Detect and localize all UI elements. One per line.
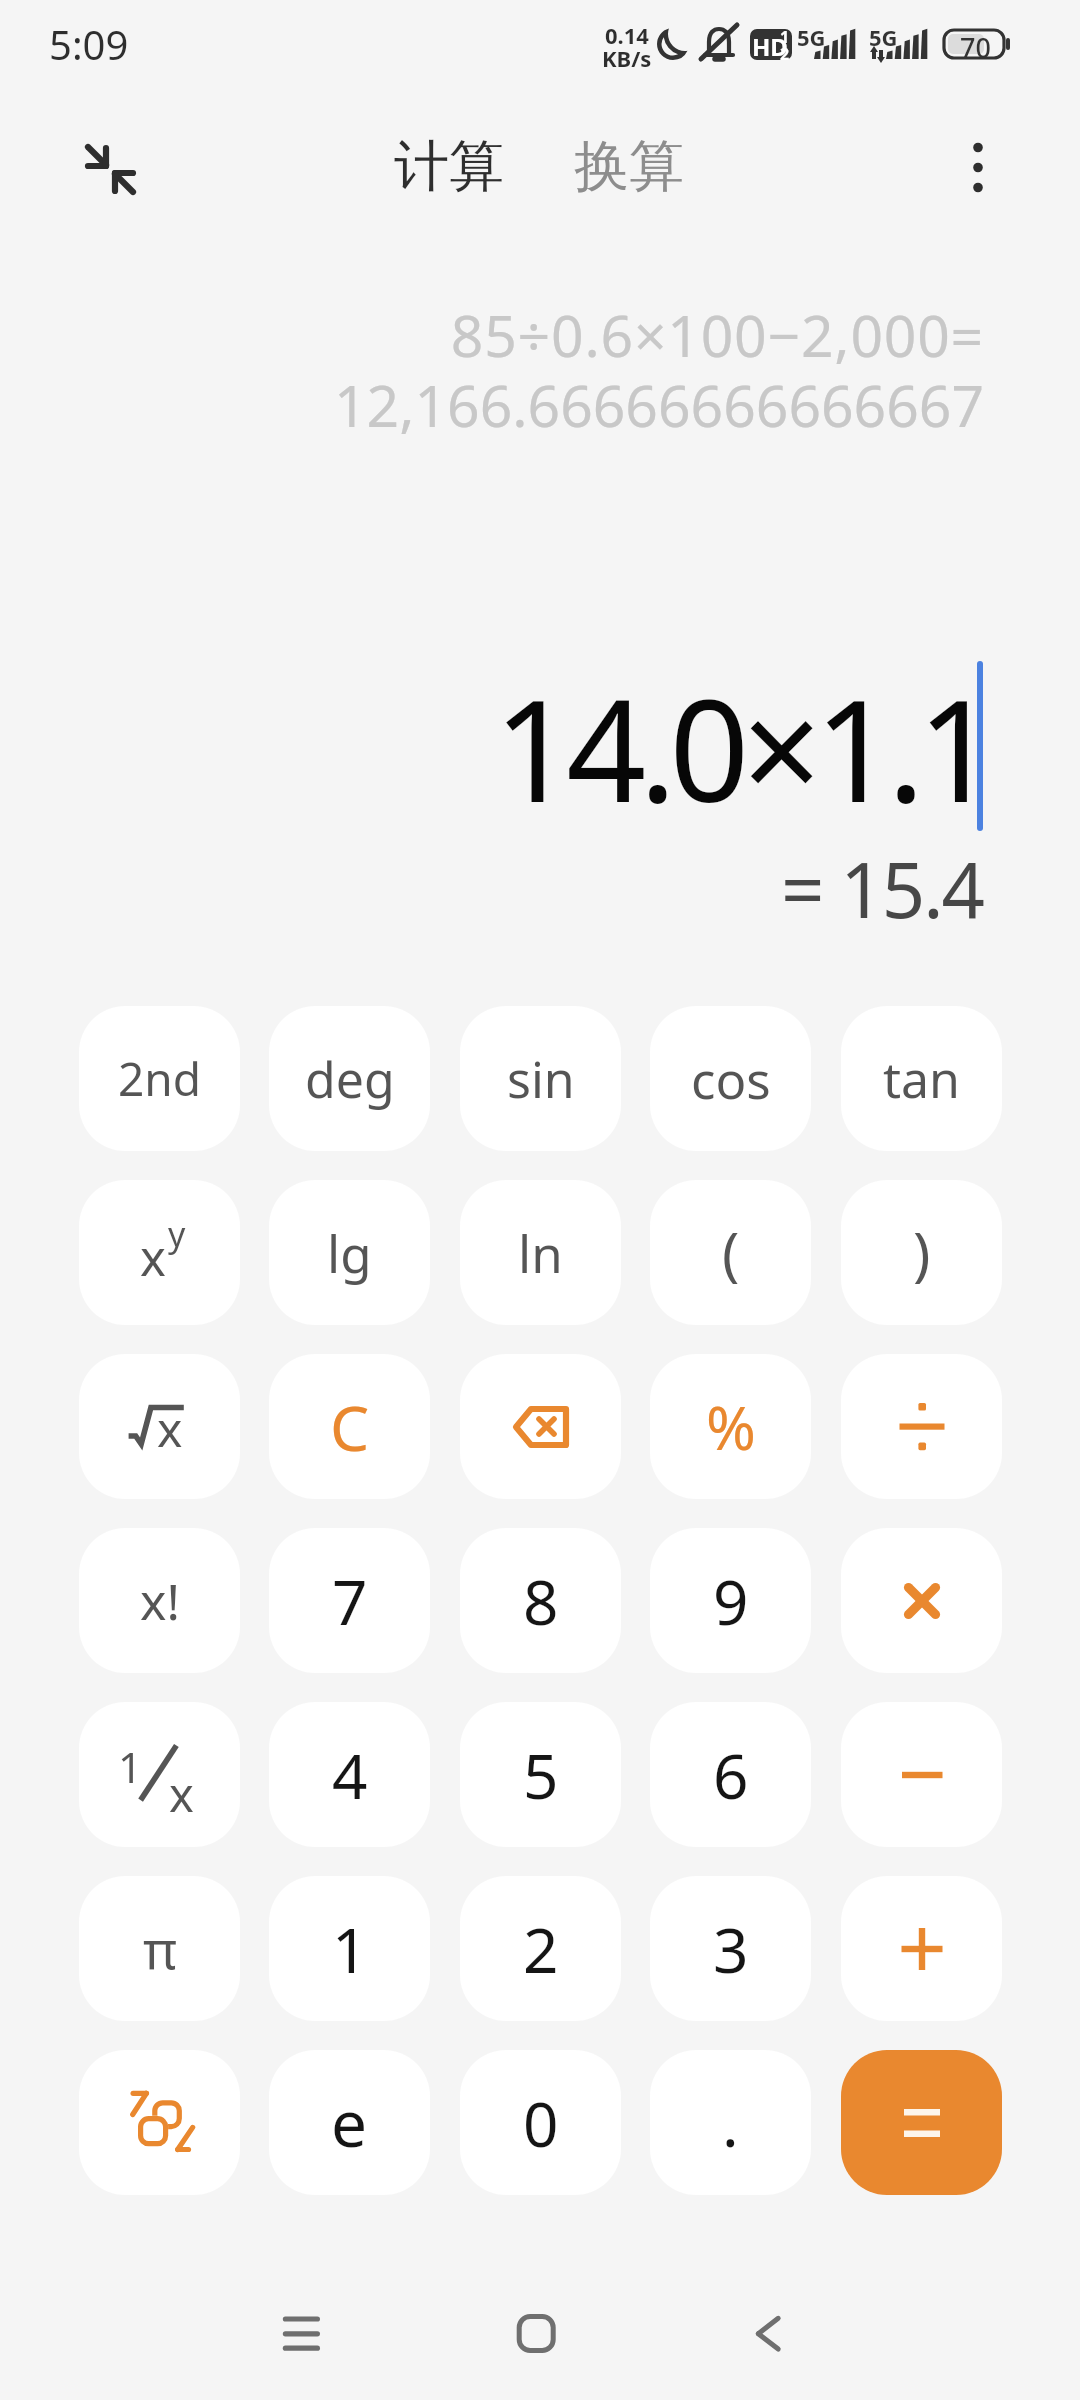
- button[interactable]: Back: [718, 2283, 818, 2383]
- button[interactable]: ): [841, 1180, 1002, 1325]
- staticText: x: [169, 1762, 194, 1826]
- button[interactable]: sin: [460, 1006, 621, 1151]
- staticText: 5:09: [49, 17, 129, 71]
- staticText: 1: [332, 1907, 368, 1991]
- button[interactable]: cos: [650, 1006, 811, 1151]
- staticText: 5: [523, 1733, 559, 1817]
- staticText: x: [140, 1224, 166, 1291]
- staticText: lg: [327, 1218, 372, 1287]
- button[interactable]: π: [79, 1876, 240, 2021]
- button[interactable]: C: [269, 1354, 430, 1499]
- staticText: 7: [332, 1559, 368, 1643]
- button[interactable]: 3: [650, 1876, 811, 2021]
- staticText: cos: [691, 1044, 771, 1113]
- staticText: deg: [305, 1045, 395, 1113]
- staticText: 6: [713, 1733, 749, 1817]
- button[interactable]: Square root: [79, 1354, 240, 1499]
- staticText: 12,166.66666666666667: [0, 366, 984, 444]
- staticText: 5G: [797, 22, 826, 52]
- button[interactable]: lg: [269, 1180, 430, 1325]
- button[interactable]: Backspace: [460, 1354, 621, 1499]
- button[interactable]: 7: [269, 1528, 430, 1673]
- button[interactable]: Reciprocal: [79, 1702, 240, 1847]
- staticText: π: [143, 1913, 177, 1984]
- staticText: 85÷0.6×100−2,000=: [0, 296, 984, 374]
- button[interactable]: 1: [269, 1876, 430, 2021]
- staticText: 2: [523, 1907, 559, 1991]
- staticText: 4: [332, 1733, 368, 1817]
- button[interactable]: Equals: [841, 2050, 1002, 2195]
- staticText: KB/s: [602, 43, 652, 73]
- staticText: 计算: [394, 132, 504, 201]
- staticText: 0.14: [605, 20, 649, 50]
- button[interactable]: Home: [486, 2283, 586, 2383]
- staticText: ): [913, 1213, 931, 1292]
- button[interactable]: 9: [650, 1528, 811, 1673]
- staticText: .: [722, 2081, 739, 2165]
- staticText: ln: [518, 1218, 563, 1287]
- button[interactable]: One-handed mode: [77, 129, 141, 193]
- staticText: tan: [883, 1045, 960, 1113]
- button[interactable]: .: [650, 2050, 811, 2195]
- staticText: y: [168, 1211, 186, 1257]
- button[interactable]: ln: [460, 1180, 621, 1325]
- button[interactable]: 计算: [394, 132, 504, 201]
- staticText: 9: [713, 1559, 749, 1643]
- button[interactable]: x!: [79, 1528, 240, 1673]
- staticText: 1 2: [780, 26, 790, 65]
- button[interactable]: 2nd: [79, 1006, 240, 1151]
- button[interactable]: e: [269, 2050, 430, 2195]
- button[interactable]: (: [650, 1180, 811, 1325]
- button[interactable]: Recent apps: [251, 2283, 351, 2383]
- staticText: 1: [118, 1738, 143, 1795]
- staticText: x: [157, 1396, 183, 1461]
- button[interactable]: deg: [269, 1006, 430, 1151]
- button[interactable]: tan: [841, 1006, 1002, 1151]
- button[interactable]: %: [650, 1354, 811, 1499]
- staticText: 5G: [869, 22, 898, 52]
- staticText: 8: [523, 1559, 559, 1643]
- button[interactable]: Multiply: [841, 1528, 1002, 1673]
- button[interactable]: 8: [460, 1528, 621, 1673]
- staticText: sin: [507, 1045, 575, 1113]
- button[interactable]: 4: [269, 1702, 430, 1847]
- button[interactable]: Add: [841, 1876, 1002, 2021]
- staticText: %: [706, 1386, 756, 1468]
- button[interactable]: 5: [460, 1702, 621, 1847]
- button[interactable]: 6: [650, 1702, 811, 1847]
- staticText: 14.0×1.1: [0, 652, 990, 843]
- staticText: HD: [752, 30, 788, 63]
- button[interactable]: More options: [948, 127, 1008, 207]
- button[interactable]: 换算: [574, 132, 684, 201]
- button[interactable]: 2: [460, 1876, 621, 2021]
- staticText: 0: [523, 2081, 559, 2165]
- staticText: x!: [140, 1567, 180, 1635]
- staticText: 换算: [574, 132, 684, 201]
- button[interactable]: x to the power of y: [79, 1180, 240, 1325]
- button[interactable]: 0: [460, 2050, 621, 2195]
- staticText: e: [331, 2079, 368, 2166]
- button[interactable]: Divide: [841, 1354, 1002, 1499]
- button[interactable]: Unit converter: [79, 2050, 240, 2195]
- button[interactable]: Subtract: [841, 1702, 1002, 1847]
- staticText: C: [330, 1385, 370, 1469]
- staticText: (: [722, 1213, 740, 1292]
- staticText: 2nd: [118, 1047, 202, 1110]
- staticText: 70: [960, 29, 991, 66]
- staticText: 3: [713, 1907, 749, 1991]
- staticText: = 15.4: [0, 837, 983, 941]
